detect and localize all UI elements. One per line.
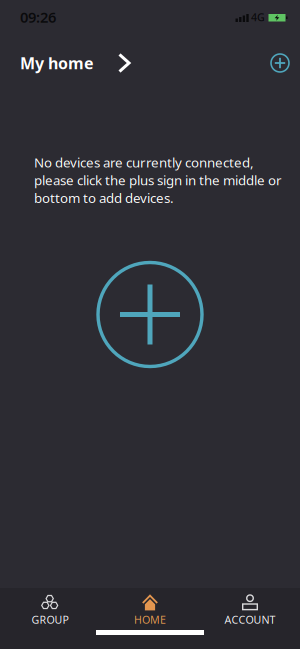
- button[interactable]: Add device: [270, 53, 290, 73]
- button[interactable]: HOME: [100, 591, 200, 629]
- staticText: ACCOUNT: [224, 612, 275, 627]
- button[interactable]: Add device: [97, 262, 202, 367]
- staticText: 4G: [251, 10, 265, 24]
- staticText: My home: [20, 52, 94, 74]
- button[interactable]: My home: [20, 52, 131, 74]
- staticText: 09:26: [20, 7, 56, 27]
- button[interactable]: GROUP: [0, 591, 100, 629]
- staticText: No devices are currently connected, plea…: [34, 153, 282, 206]
- button[interactable]: ACCOUNT: [200, 591, 300, 629]
- staticText: GROUP: [31, 612, 68, 627]
- staticText: HOME: [134, 612, 166, 627]
